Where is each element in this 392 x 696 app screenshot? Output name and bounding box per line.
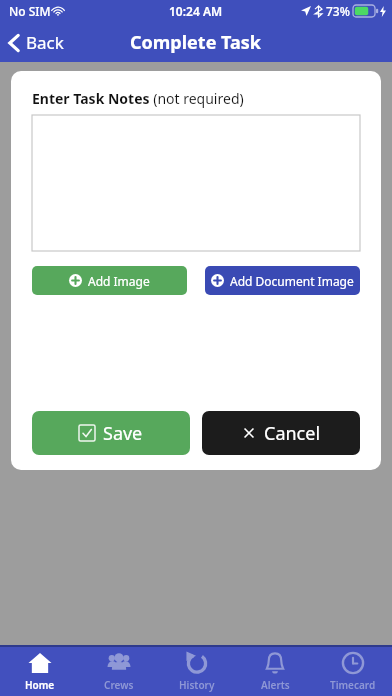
staticText: Back	[26, 31, 64, 54]
button[interactable]: Task notes input	[32, 115, 360, 251]
button[interactable]: Add Image	[32, 266, 187, 295]
button[interactable]: Alerts	[236, 647, 314, 696]
button[interactable]: Back	[0, 27, 76, 58]
staticText: 73%	[326, 3, 350, 19]
staticText: Cancel	[264, 421, 321, 446]
staticText: Add Document Image	[230, 273, 354, 289]
staticText: Complete Task	[130, 30, 262, 55]
staticText: Home	[25, 678, 55, 692]
button[interactable]: Timecard	[314, 647, 392, 696]
staticText: 10:24 AM	[169, 3, 223, 19]
button[interactable]: Add Document Image	[205, 266, 360, 295]
staticText: Save	[103, 421, 143, 446]
staticText: Enter Task Notes (not required)	[32, 89, 244, 108]
button[interactable]: History	[158, 647, 236, 696]
staticText: Alerts	[261, 678, 290, 692]
staticText: History	[179, 678, 215, 692]
button[interactable]: Home	[0, 647, 79, 696]
staticText: Add Image	[88, 273, 150, 289]
staticText: Crews	[104, 678, 134, 692]
staticText: Timecard	[330, 678, 376, 692]
button[interactable]: Save	[32, 411, 190, 455]
button[interactable]: Cancel	[202, 411, 360, 455]
button[interactable]: Crews	[79, 647, 158, 696]
staticText: No SIM	[9, 3, 51, 19]
